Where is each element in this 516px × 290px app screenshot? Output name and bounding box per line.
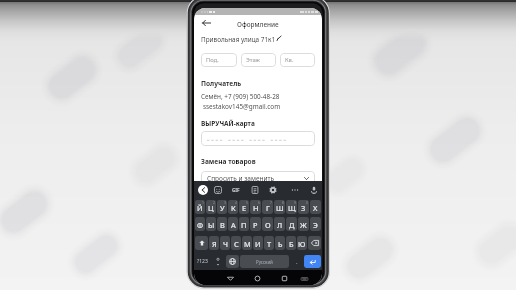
staticText: Е	[242, 203, 247, 213]
button[interactable]: Х	[310, 200, 321, 214]
staticText: У	[220, 203, 225, 213]
staticText: Ш	[276, 203, 284, 213]
button[interactable]: У	[217, 200, 227, 214]
button[interactable]: Change language	[226, 255, 239, 268]
staticText: ?123	[197, 258, 208, 265]
button[interactable]: З	[298, 200, 309, 214]
button[interactable]: More options	[291, 187, 299, 193]
staticText: Оформление	[237, 20, 279, 29]
button[interactable]: Ч	[220, 236, 230, 250]
button[interactable]: Э	[310, 217, 321, 231]
button[interactable]: Settings	[269, 186, 277, 194]
staticText: 9	[294, 200, 296, 205]
staticText: ssestakov145@gmail.com	[203, 102, 281, 111]
staticText: Ч	[223, 239, 228, 249]
staticText: П	[241, 220, 247, 230]
button[interactable]: Я	[209, 236, 219, 250]
button[interactable]: ?123	[195, 255, 210, 268]
button[interactable]: Д	[286, 217, 297, 231]
button[interactable]: И	[253, 236, 263, 250]
button[interactable]: Recent apps	[280, 274, 289, 283]
button[interactable]: М	[242, 236, 252, 250]
button[interactable]: К	[228, 200, 238, 214]
button[interactable]: Ь	[275, 236, 285, 250]
button[interactable]: Л	[274, 217, 285, 231]
button[interactable]: Shift	[195, 236, 208, 250]
staticText: 4	[235, 200, 237, 205]
staticText: О	[265, 220, 271, 230]
button[interactable]: Кв.	[280, 53, 315, 67]
staticText: Ж	[300, 220, 307, 230]
button[interactable]: Р	[250, 217, 261, 231]
staticText: 1	[202, 200, 204, 205]
button[interactable]: Й	[195, 200, 205, 214]
button[interactable]: Switch keyboard	[300, 275, 309, 283]
staticText: Ц	[208, 203, 214, 213]
staticText: Л	[277, 220, 283, 230]
staticText: 7	[270, 200, 272, 205]
button[interactable]: Щ	[286, 200, 297, 214]
staticText: В	[220, 220, 225, 230]
button[interactable]: Ю	[297, 236, 307, 250]
button[interactable]: Voice input	[310, 186, 318, 194]
button[interactable]: В	[217, 217, 227, 231]
button[interactable]: Ж	[298, 217, 309, 231]
button[interactable]: .	[290, 255, 303, 268]
button[interactable]: Ф	[195, 217, 205, 231]
staticText: Я	[212, 239, 217, 249]
button[interactable]: Clipboard	[251, 186, 259, 194]
staticText: Э	[313, 220, 318, 230]
staticText: .	[296, 258, 298, 266]
button[interactable]: П	[239, 217, 249, 231]
button[interactable]	[201, 131, 315, 146]
staticText: 2	[213, 200, 215, 205]
button[interactable]: Hide keyboard toolbar	[198, 185, 208, 195]
staticText: 8	[282, 200, 284, 205]
staticText: Привольная улица 71к1	[201, 35, 276, 44]
button[interactable]: Back	[202, 20, 211, 26]
staticText: М	[244, 239, 251, 249]
button[interactable]: Ц	[206, 200, 216, 214]
staticText: Кв.	[285, 56, 294, 64]
staticText: Ь	[278, 239, 283, 249]
staticText: З	[301, 203, 306, 213]
button[interactable]: Под.	[201, 53, 237, 67]
staticText: Н	[253, 203, 259, 213]
button[interactable]: Н	[250, 200, 261, 214]
button[interactable]: GIF	[232, 187, 240, 193]
staticText: Х	[313, 203, 318, 213]
staticText: Семён, +7 (909) 500-48-28	[201, 92, 280, 101]
button[interactable]: Е	[239, 200, 249, 214]
button[interactable]: Г	[262, 200, 273, 214]
button[interactable]: Т	[264, 236, 274, 250]
button[interactable]: Back	[226, 274, 235, 283]
staticText: ВЫРУЧАЙ-карта	[201, 119, 255, 128]
button[interactable]: Спросить и заменить	[201, 171, 315, 186]
staticText: Щ	[288, 203, 296, 213]
staticText: И	[255, 239, 261, 249]
staticText: Б	[289, 239, 294, 249]
button[interactable]: Русский	[240, 255, 289, 268]
staticText: Под.	[206, 56, 219, 64]
button[interactable]: Ы	[206, 217, 216, 231]
button[interactable]	[211, 255, 225, 268]
button[interactable]: Ш	[274, 200, 285, 214]
button[interactable]: С	[231, 236, 241, 250]
button[interactable]: Edit address	[276, 35, 282, 41]
button[interactable]: Б	[286, 236, 296, 250]
button[interactable]: Этаж	[241, 53, 276, 67]
button[interactable]: Home	[253, 274, 262, 283]
staticText: Этаж	[246, 56, 260, 64]
button[interactable]: Backspace	[308, 236, 321, 250]
staticText: 0	[306, 200, 308, 205]
staticText: Ю	[298, 239, 306, 249]
button[interactable]: Stickers	[214, 186, 222, 194]
staticText: Ф	[197, 220, 204, 230]
button[interactable]: О	[262, 217, 273, 231]
staticText: Замена товаров	[201, 157, 256, 166]
button[interactable]: А	[228, 217, 238, 231]
staticText: Получатель	[201, 79, 242, 88]
staticText: А	[231, 220, 236, 230]
button[interactable]: Enter	[304, 255, 321, 268]
staticText: Г	[266, 203, 270, 213]
